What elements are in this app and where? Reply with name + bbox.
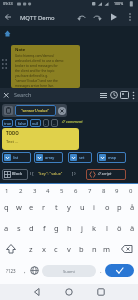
button[interactable] (64, 287, 74, 297)
button[interactable] (110, 91, 118, 99)
button[interactable]: Suomi (42, 265, 96, 277)
button[interactable]: -- (51, 119, 58, 127)
button[interactable] (96, 287, 106, 297)
staticText: l (106, 223, 108, 233)
staticText: . (100, 267, 102, 275)
button[interactable]: 6 (70, 186, 82, 196)
staticText: Block (12, 171, 23, 176)
staticText: ( [ (30, 171, 34, 176)
button[interactable] (109, 12, 118, 22)
button[interactable]: y (63, 199, 75, 215)
button[interactable]: p (113, 199, 125, 215)
button[interactable]: z (25, 241, 37, 257)
button[interactable]: x (38, 241, 50, 257)
button[interactable]: 1 (1, 186, 13, 196)
button[interactable]: i (88, 199, 100, 215)
button[interactable]: k (88, 220, 100, 236)
button[interactable] (126, 11, 134, 23)
button[interactable]: null (30, 119, 41, 127)
button[interactable]: "sensor1/value" (2, 104, 67, 117)
button[interactable]: true (2, 119, 13, 127)
button[interactable]: - (43, 119, 49, 127)
staticText: array (45, 155, 55, 160)
staticText: d (29, 223, 34, 233)
button[interactable]: e (25, 199, 37, 215)
button[interactable]: l (101, 220, 113, 236)
button[interactable]: d (25, 220, 37, 236)
button[interactable]: s (13, 220, 25, 236)
button[interactable]: ?123 (2, 263, 20, 279)
button[interactable]: 2 (15, 186, 27, 196)
button[interactable] (30, 266, 39, 275)
button[interactable]: j (76, 220, 88, 236)
staticText: 09:33 (3, 1, 13, 6)
staticText: q (4, 202, 9, 212)
button[interactable]: 4 (42, 186, 54, 196)
button[interactable]: c (50, 241, 62, 257)
button[interactable]: q (0, 199, 12, 215)
button[interactable]: t (50, 199, 62, 215)
staticText: a (4, 223, 9, 233)
staticText: å (130, 202, 135, 212)
button[interactable]: f (38, 220, 50, 236)
button[interactable] (120, 91, 129, 99)
button[interactable]: array (34, 152, 63, 163)
button[interactable]: v (63, 241, 75, 257)
staticText: g (54, 223, 59, 233)
button[interactable]: 7 (84, 186, 96, 196)
staticText: TODO (6, 130, 19, 136)
button[interactable]: w (13, 199, 25, 215)
button[interactable]: list (2, 152, 31, 163)
button[interactable]: o (101, 199, 113, 215)
button[interactable] (32, 287, 42, 297)
button[interactable]: 3 (29, 186, 41, 196)
button[interactable]: ä (126, 220, 138, 236)
button[interactable] (105, 264, 134, 277)
staticText: 7 (88, 187, 92, 195)
button[interactable]: 5 (56, 186, 68, 196)
button[interactable]: m (101, 241, 113, 257)
staticText: , (24, 267, 26, 275)
button[interactable]: h (63, 220, 75, 236)
staticText: // script (98, 171, 112, 176)
staticText: set (79, 155, 85, 160)
button[interactable]: 8 (98, 186, 110, 196)
button[interactable] (120, 242, 134, 256)
button[interactable]: ö (113, 220, 125, 236)
button[interactable]: 0 (125, 186, 137, 196)
staticText: Note (15, 47, 26, 53)
button[interactable] (4, 242, 18, 256)
staticText: 0 (129, 187, 133, 195)
button[interactable] (3, 92, 10, 99)
staticText: i (93, 202, 95, 212)
staticText: Text ... (6, 139, 19, 145)
staticText: 4 (46, 187, 50, 195)
button[interactable]: TODO (2, 128, 79, 150)
button[interactable] (58, 107, 66, 115)
button[interactable]: set (68, 152, 92, 163)
button[interactable]: Note (11, 45, 80, 88)
staticText: x (42, 244, 46, 254)
button[interactable] (91, 13, 102, 22)
button[interactable]: 9 (111, 186, 123, 196)
button[interactable]: r (38, 199, 50, 215)
button[interactable]: Block (2, 169, 28, 180)
button[interactable] (77, 13, 88, 22)
button[interactable]: map (97, 152, 126, 163)
staticText: // comment (62, 119, 83, 124)
button[interactable]: b (75, 241, 87, 257)
staticText: 2 (19, 187, 23, 195)
button[interactable]: // script (86, 169, 126, 180)
button[interactable] (99, 92, 108, 99)
staticText: s (17, 223, 21, 233)
button[interactable]: å (126, 199, 138, 215)
button[interactable]: g (50, 220, 62, 236)
button[interactable]: a (0, 220, 12, 236)
button[interactable]: false (15, 119, 28, 127)
button[interactable] (131, 91, 136, 100)
button[interactable] (3, 12, 13, 22)
button[interactable]: u (76, 199, 88, 215)
button[interactable]: n (88, 241, 100, 257)
staticText: c (54, 244, 58, 254)
staticText: o (105, 202, 110, 212)
